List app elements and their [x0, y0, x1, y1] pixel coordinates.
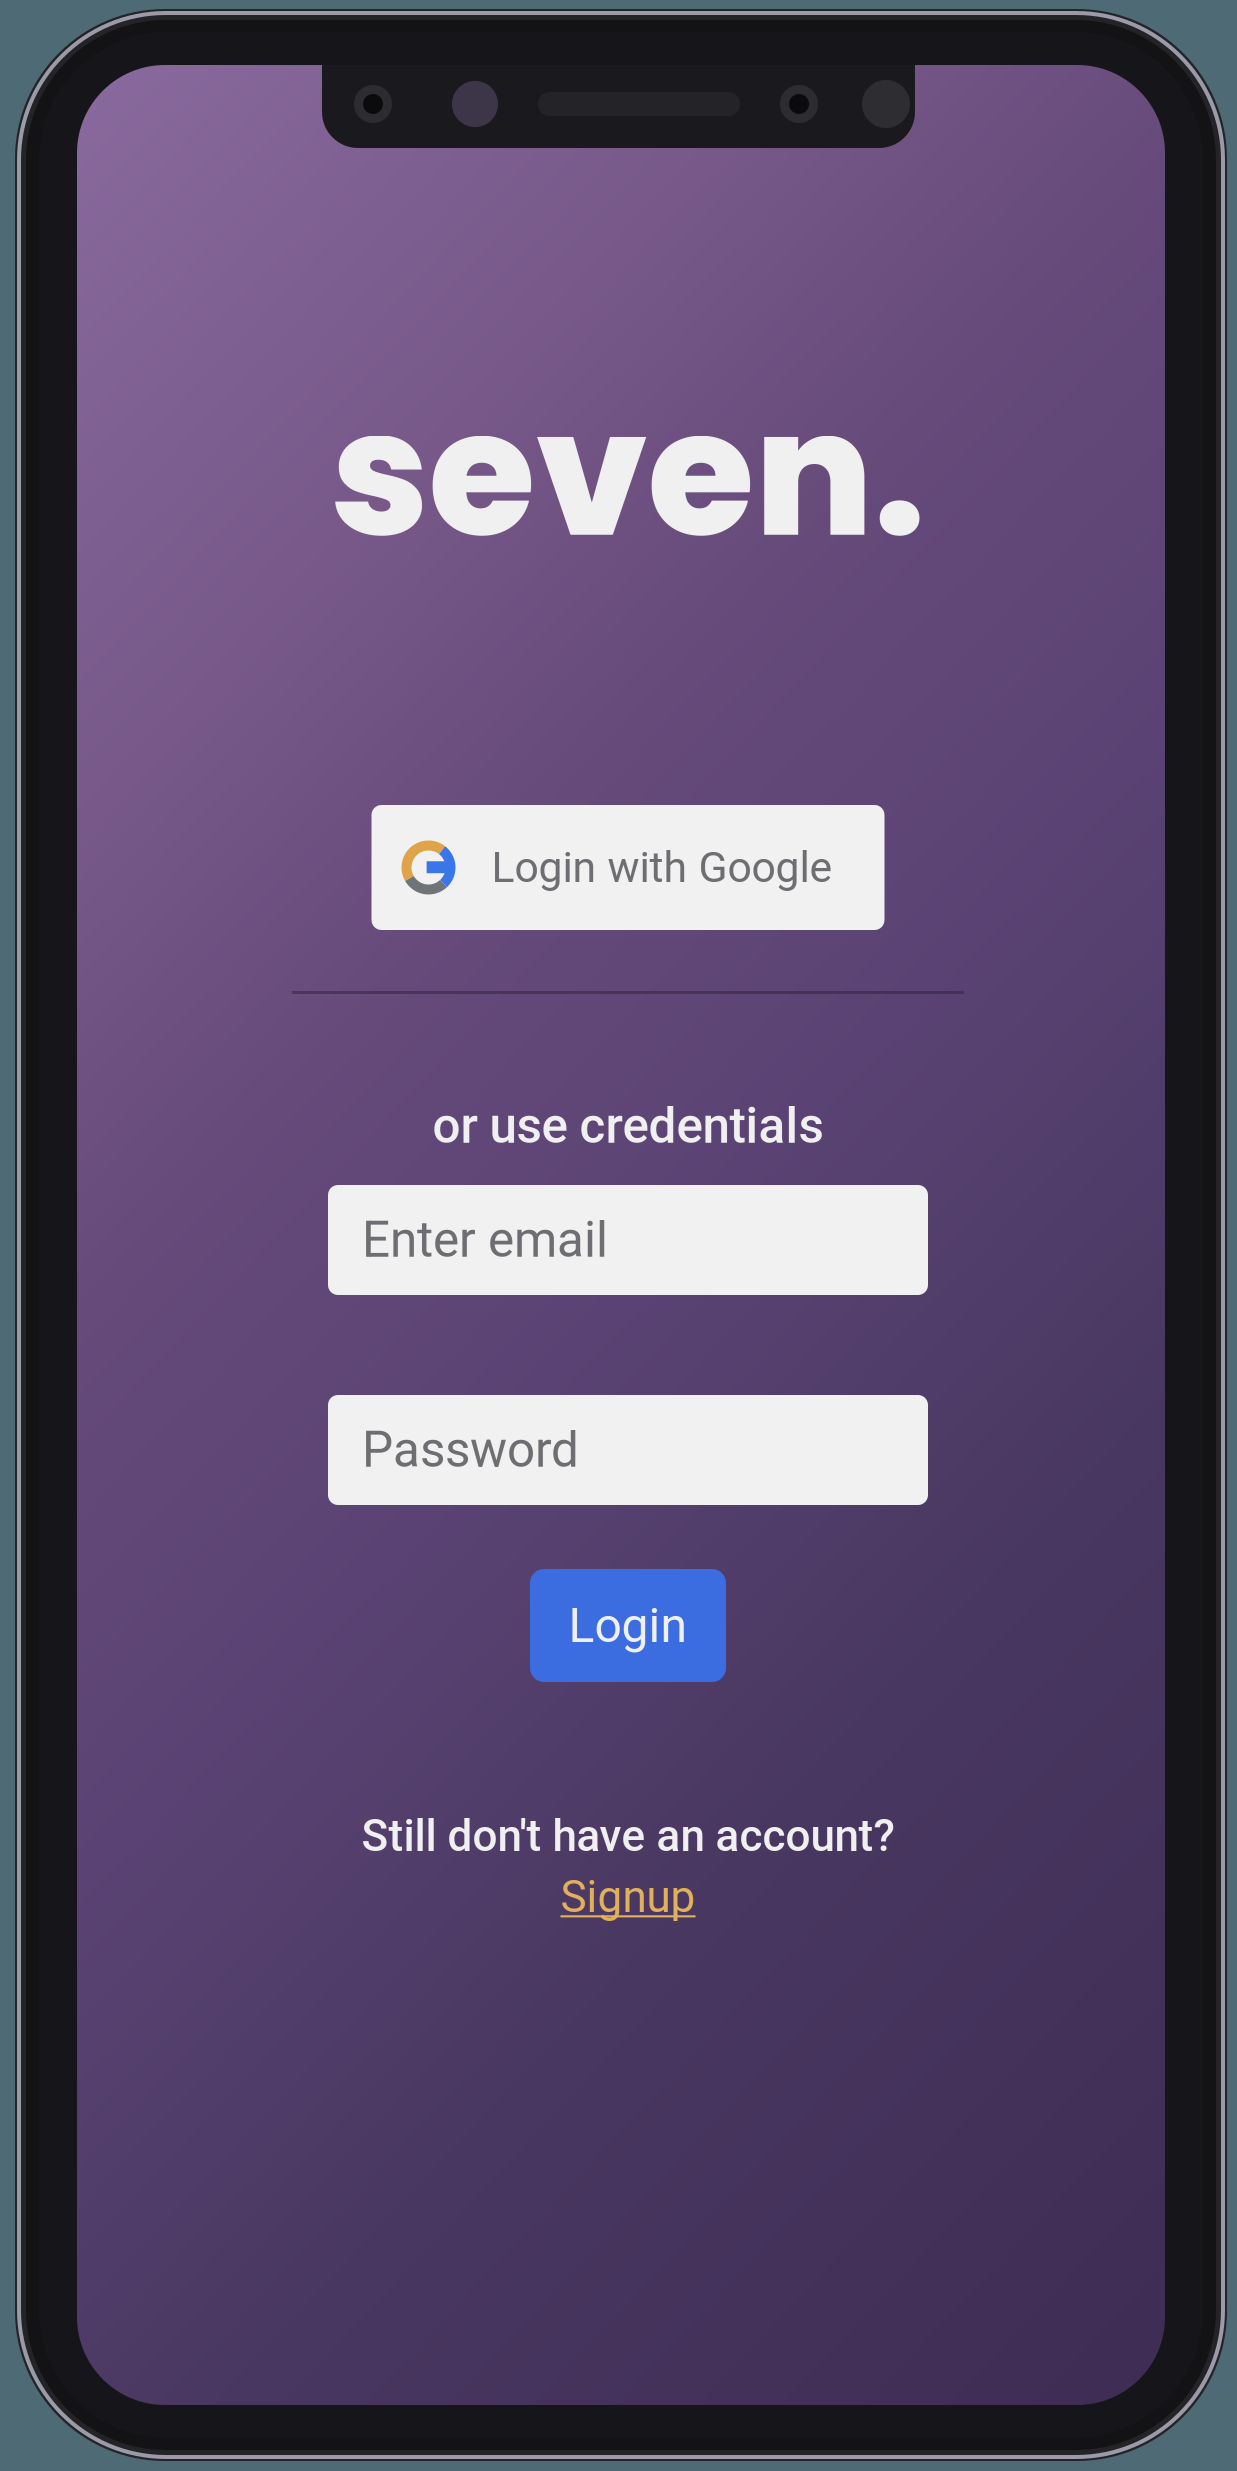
staticText: seven. — [330, 353, 925, 595]
staticText: Login — [568, 1597, 687, 1654]
button[interactable]: Signup — [560, 1871, 695, 1923]
button[interactable]: Login with Google — [371, 805, 884, 930]
staticText: Login with Google — [491, 842, 832, 892]
staticText: Still don't have an account? — [361, 1810, 894, 1862]
staticText: Password — [362, 1421, 579, 1479]
staticText: or use credentials — [432, 1097, 823, 1155]
staticText: Enter email — [362, 1211, 608, 1269]
button[interactable]: Login — [530, 1569, 726, 1682]
staticText: Signup — [560, 1871, 695, 1923]
